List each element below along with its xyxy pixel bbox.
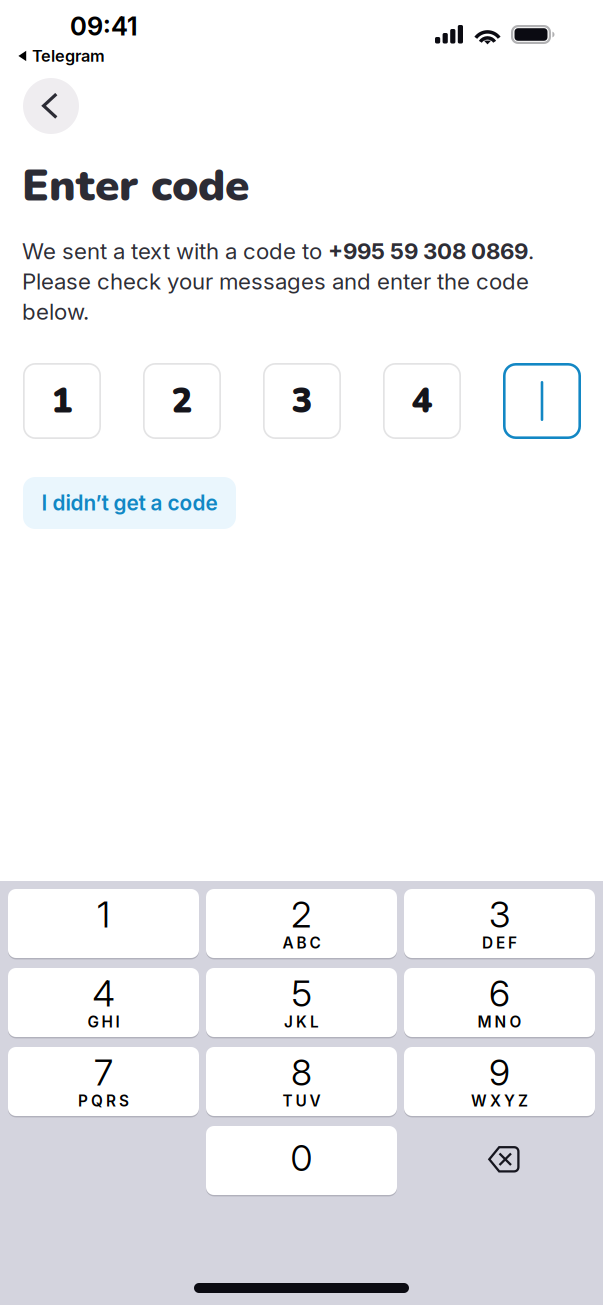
button[interactable]: 4 [8, 968, 199, 1037]
staticText: 2 [291, 893, 312, 936]
button[interactable]: 0 [206, 1126, 397, 1195]
staticText: T U V [282, 1092, 320, 1110]
staticText: A B C [282, 934, 320, 952]
staticText: 8 [291, 1051, 312, 1094]
staticText: 4 [92, 972, 114, 1015]
button[interactable]: Telegram [18, 44, 105, 68]
staticText: I didn’t get a code [41, 490, 217, 516]
staticText: 1 [51, 377, 72, 425]
staticText: 09:41 [70, 11, 138, 42]
staticText: below. [22, 298, 89, 325]
staticText: M N O [477, 1013, 521, 1031]
button[interactable]: Back [23, 78, 79, 134]
staticText: J K L [284, 1013, 319, 1031]
staticText: Please check your messages and enter the… [22, 268, 529, 295]
staticText: 0 [290, 1136, 312, 1180]
button[interactable]: Code digit, empty [503, 363, 581, 439]
staticText: D E F [482, 934, 517, 952]
button[interactable]: 7 [8, 1047, 199, 1116]
staticText: 9 [489, 1051, 510, 1094]
button[interactable]: 2 [206, 889, 397, 958]
staticText: 4 [411, 377, 432, 425]
button[interactable]: 5 [206, 968, 397, 1037]
button[interactable]: Code digit 4 [383, 363, 461, 439]
staticText: 7 [94, 1051, 113, 1094]
button[interactable]: 1 [8, 889, 199, 958]
button[interactable]: Delete [404, 1126, 595, 1195]
staticText: 2 [171, 377, 192, 425]
staticText: 1 [97, 893, 110, 936]
button[interactable]: 9 [404, 1047, 595, 1116]
staticText: 6 [489, 972, 510, 1015]
staticText: 3 [489, 893, 510, 936]
staticText: Enter code [22, 156, 249, 216]
staticText: 5 [291, 972, 311, 1015]
button[interactable]: Code digit 1 [23, 363, 101, 439]
button[interactable]: 3 [404, 889, 595, 958]
staticText: G H I [87, 1013, 119, 1031]
staticText: W X Y Z [471, 1092, 528, 1110]
button[interactable]: Code digit 2 [143, 363, 221, 439]
button[interactable]: 6 [404, 968, 595, 1037]
staticText: We sent a text with a code to +995 59 30… [22, 238, 534, 264]
button[interactable]: 8 [206, 1047, 397, 1116]
staticText: P Q R S [78, 1092, 129, 1110]
button[interactable]: I didn’t get a code [23, 477, 236, 529]
staticText: 3 [291, 377, 312, 425]
button[interactable]: Code digit 3 [263, 363, 341, 439]
staticText: Telegram [32, 46, 105, 66]
